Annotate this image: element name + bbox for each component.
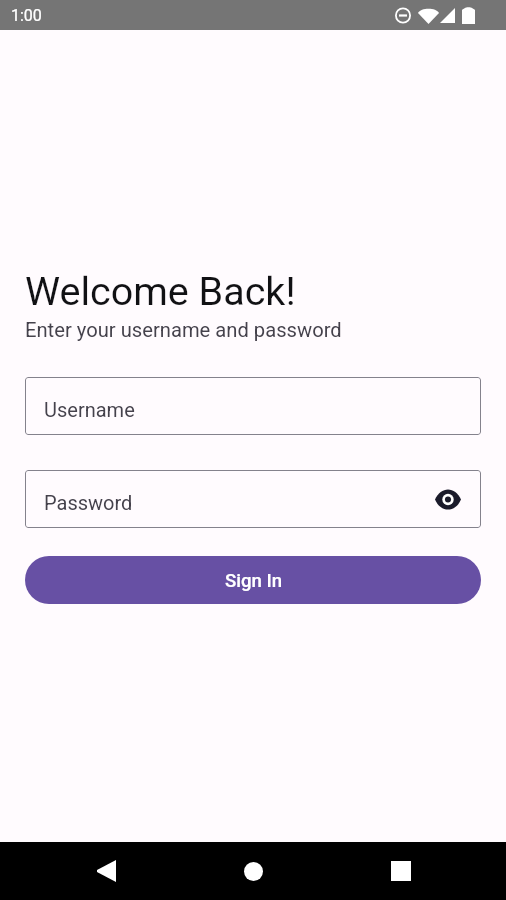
button[interactable]: Show password [431,482,465,516]
button[interactable]: Sign In [25,556,481,604]
staticText: Sign In [225,570,283,592]
button[interactable]: Username [25,377,481,435]
button[interactable]: Back [33,842,180,900]
button[interactable]: Recent apps [327,842,474,900]
staticText: 1:00 [11,6,42,25]
staticText: Welcome Back! [25,268,296,314]
button[interactable]: Home [180,842,327,900]
staticText: Password [44,491,133,514]
button[interactable]: Password [25,470,481,528]
staticText: Enter your username and password [25,318,342,342]
staticText: Username [44,398,135,421]
